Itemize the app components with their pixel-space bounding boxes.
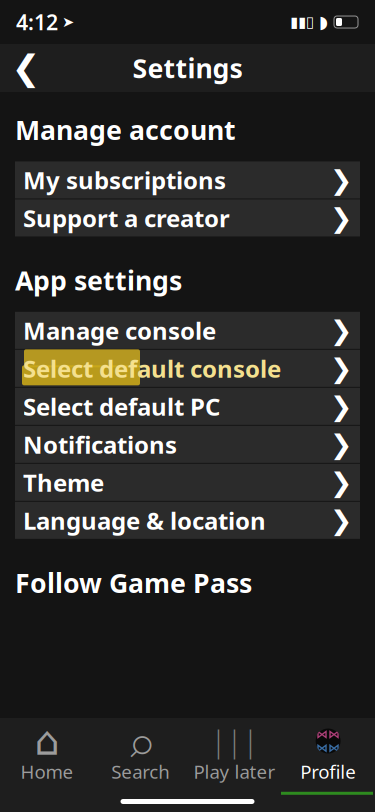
button[interactable]: Back (2, 44, 50, 92)
button[interactable]: My subscriptions (15, 161, 360, 198)
staticText: ❯ (330, 467, 352, 497)
staticText: My subscriptions (23, 164, 226, 196)
staticText: Play later (193, 759, 275, 784)
staticText: ❯ (330, 353, 352, 383)
staticText: Home (20, 759, 73, 784)
button[interactable]: ||| (187, 728, 281, 784)
staticText: Select default console (23, 352, 281, 384)
button[interactable]: ⌂ (0, 728, 94, 784)
staticText: Select default console (23, 352, 281, 384)
staticText: ❯ (330, 391, 352, 421)
staticText: ▮▮▯ (290, 14, 314, 30)
button[interactable]: Manage console (15, 312, 360, 349)
staticText: App settings (15, 262, 182, 298)
staticText: Support a creator (23, 202, 230, 234)
staticText: ❯ (330, 315, 352, 345)
staticText: Language & location (23, 504, 266, 536)
button[interactable]: Select default PC (15, 388, 360, 425)
staticText: ❯ (330, 165, 352, 195)
staticText: Theme (23, 466, 104, 498)
staticText: ◗ (319, 12, 328, 32)
staticText: ⋈⋈ (316, 727, 340, 741)
staticText: Settings (132, 50, 242, 86)
staticText: Follow Game Pass (15, 565, 252, 600)
button[interactable]: Select default console (15, 350, 360, 387)
staticText: Notifications (23, 428, 177, 460)
staticText: ⌕ (128, 701, 153, 781)
staticText: Manage account (15, 112, 236, 147)
button[interactable]: Theme (15, 464, 360, 501)
staticText: ⋈⋈ (316, 741, 340, 755)
button[interactable]: ⌕ (94, 728, 188, 784)
button[interactable]: Support a creator (15, 199, 360, 236)
staticText: Profile (300, 759, 356, 784)
button[interactable]: Language & location (15, 502, 360, 539)
staticText: ⌂ (34, 718, 59, 764)
staticText: ➤ (62, 14, 74, 30)
staticText: ❯ (330, 203, 352, 233)
staticText: ❮ (11, 48, 40, 88)
staticText: Search (111, 759, 170, 784)
staticText: ||| (210, 721, 258, 760)
staticText: ❯ (330, 429, 352, 459)
button[interactable]: ⋈⋈ (281, 728, 375, 784)
staticText: Manage console (23, 314, 216, 346)
staticText: Select default PC (23, 390, 220, 422)
staticText: ❯ (330, 505, 352, 535)
staticText: 4:12 (16, 8, 58, 36)
button[interactable]: Notifications (15, 426, 360, 463)
